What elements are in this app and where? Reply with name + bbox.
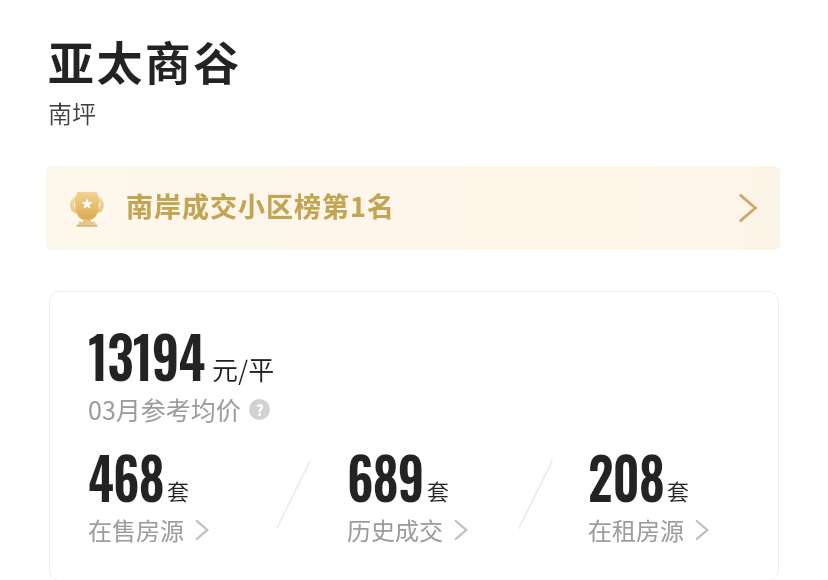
staticText: 在租房源 (588, 512, 684, 547)
staticText: 套 (167, 474, 190, 506)
button[interactable]: 208 (588, 433, 779, 554)
staticText: 在售房源 (88, 512, 184, 547)
staticText: 历史成交 (347, 512, 443, 547)
staticText: 亚太商谷 (48, 27, 242, 94)
staticText: 套 (427, 474, 450, 506)
staticText: 元/平 (212, 350, 275, 388)
staticText: 南岸成交小区榜第1名 (126, 186, 395, 225)
staticText: 468 (88, 433, 164, 519)
button[interactable]: 03月参考均价 (88, 391, 270, 427)
staticText: 南坪 (48, 95, 96, 130)
button[interactable]: 689 (347, 433, 547, 554)
staticText: ? (256, 399, 264, 420)
button[interactable]: 468 (88, 433, 288, 554)
staticText: 208 (588, 433, 664, 519)
staticText: 13194 (88, 312, 205, 398)
staticText: 套 (667, 474, 690, 506)
button[interactable]: 南岸成交小区榜第1名 (46, 166, 780, 250)
staticText: 03月参考均价 (88, 391, 241, 427)
staticText: 689 (347, 433, 424, 519)
